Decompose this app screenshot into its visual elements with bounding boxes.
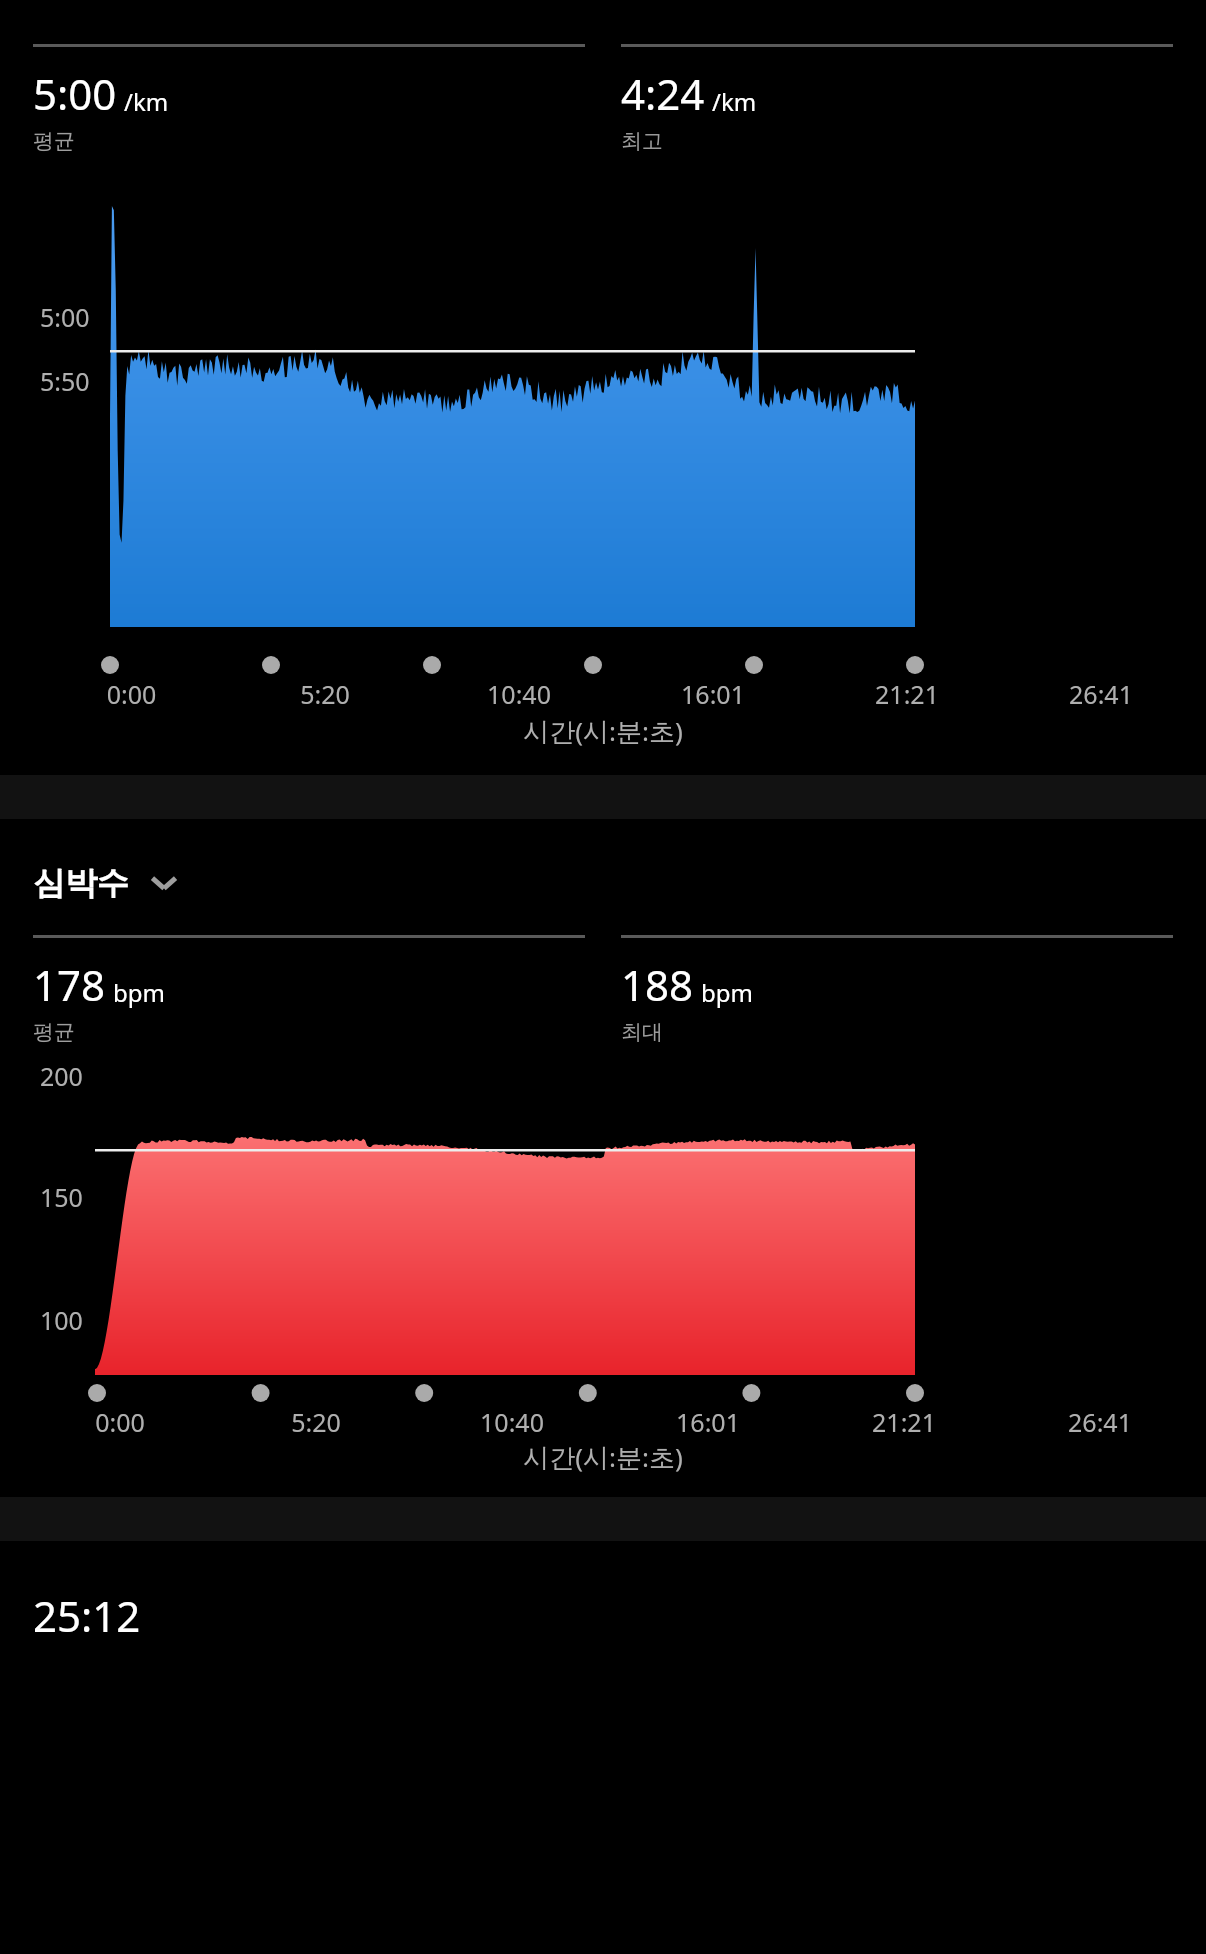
staticText: 4:24 xyxy=(621,65,705,122)
staticText: 0:00 xyxy=(22,1405,218,1439)
staticText: bpm xyxy=(701,976,753,1009)
staticText: 5:00 xyxy=(33,65,117,122)
staticText: 심박수 xyxy=(33,863,129,903)
other: Collapse heart rate xyxy=(147,866,181,900)
staticText: 평균 xyxy=(33,128,75,154)
staticText: 평균 xyxy=(33,1019,75,1045)
staticText: 16:01 xyxy=(616,677,810,711)
staticText: 5:50 xyxy=(40,364,90,398)
staticText: 21:21 xyxy=(810,677,1004,711)
staticText: 25:12 xyxy=(33,1587,141,1644)
staticText: 21:21 xyxy=(806,1405,1002,1439)
staticText: 10:40 xyxy=(422,677,616,711)
staticText: 0:00 xyxy=(35,677,228,711)
staticText: 100 xyxy=(40,1303,83,1337)
staticText: 188 xyxy=(621,956,694,1013)
staticText: 16:01 xyxy=(610,1405,806,1439)
staticText: 5:00 xyxy=(40,300,90,334)
staticText: /km xyxy=(124,85,169,118)
staticText: 최대 xyxy=(621,1019,663,1045)
staticText: 178 xyxy=(33,956,106,1013)
staticText: 200 xyxy=(40,1059,83,1093)
staticText: bpm xyxy=(113,976,165,1009)
staticText: 5:20 xyxy=(218,1405,414,1439)
staticText: 150 xyxy=(40,1180,83,1214)
staticText: 5:20 xyxy=(228,677,422,711)
staticText: 26:41 xyxy=(1002,1405,1198,1439)
staticText: 26:41 xyxy=(1004,677,1198,711)
staticText: 최고 xyxy=(621,128,663,154)
staticText: 시간(시:분:초) xyxy=(0,713,1206,749)
button[interactable]: 심박수 xyxy=(33,859,193,907)
staticText: 10:40 xyxy=(414,1405,610,1439)
staticText: 시간(시:분:초) xyxy=(0,1439,1206,1475)
staticText: /km xyxy=(712,85,757,118)
